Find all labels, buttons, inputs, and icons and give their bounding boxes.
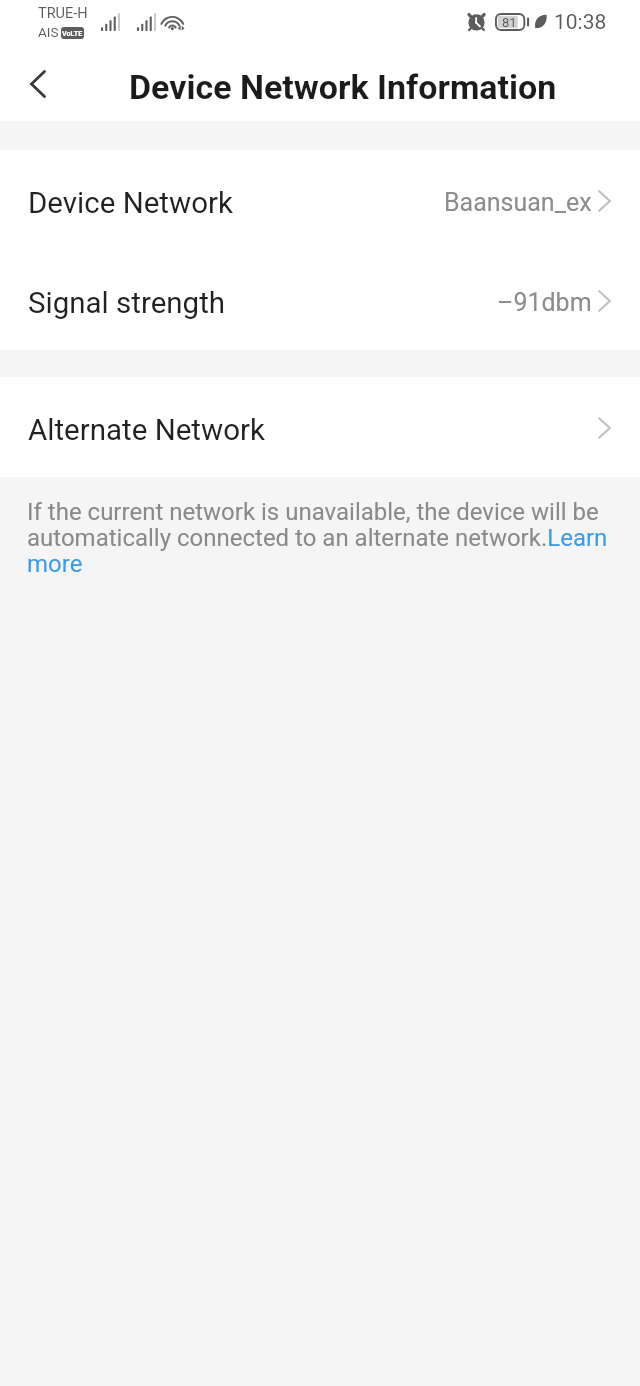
staticText: 10:38 — [554, 10, 607, 35]
staticText: Signal strength — [28, 286, 226, 321]
button[interactable] — [27, 550, 83, 576]
button[interactable]: Device Network — [0, 150, 640, 250]
staticText: Alternate Network — [28, 413, 265, 448]
staticText: Baansuan_ex — [444, 188, 592, 217]
staticText: VoLTE — [62, 29, 83, 37]
staticText: 81 — [502, 15, 517, 30]
button[interactable]: Signal strength — [0, 250, 640, 350]
staticText: Device Network — [28, 186, 233, 221]
staticText: TRUE-H — [38, 5, 88, 22]
staticText: If the current network is unavailable, t… — [27, 498, 610, 578]
staticText: Device Network Information — [129, 67, 557, 107]
button[interactable]: Learn more — [548, 522, 610, 548]
staticText: –91dbm — [497, 288, 592, 317]
button[interactable]: Back — [10, 58, 66, 114]
staticText: AIS — [38, 24, 59, 40]
button[interactable]: Alternate Network — [0, 377, 640, 477]
